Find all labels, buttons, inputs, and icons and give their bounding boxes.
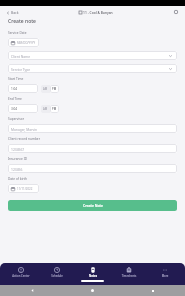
staticText: 3:04 xyxy=(11,107,18,111)
staticText: Insurance ID xyxy=(8,157,177,161)
button[interactable]: 123456 xyxy=(8,164,177,173)
button[interactable]: 11/11/2022 xyxy=(8,184,39,193)
staticText: 11 - Cool & Bunyan xyxy=(83,10,113,14)
button[interactable]: Schedule xyxy=(39,267,75,278)
staticText: MM/DD/YYYY xyxy=(17,41,36,45)
button[interactable]: Back xyxy=(4,9,21,16)
button[interactable]: AM xyxy=(41,105,50,113)
staticText: Timesheets xyxy=(111,274,147,278)
staticText: Back xyxy=(11,10,19,15)
staticText: 1:04 xyxy=(11,87,18,91)
button[interactable]: Create Note xyxy=(8,200,177,211)
staticText: 123456 xyxy=(11,167,23,171)
button[interactable]: More xyxy=(147,267,183,278)
button[interactable]: 1234567 xyxy=(8,144,177,153)
staticText: Supervisor xyxy=(8,117,177,121)
staticText: Schedule xyxy=(39,274,75,278)
button[interactable]: PM xyxy=(50,105,59,113)
staticText: Date of birth xyxy=(8,177,177,181)
staticText: 1234567 xyxy=(11,147,25,151)
button[interactable]: Notes xyxy=(75,267,111,278)
staticText: Manager, Marvin xyxy=(11,127,37,131)
staticText: Start Time xyxy=(8,77,177,81)
staticText: Create note xyxy=(8,18,36,25)
staticText: Action Center xyxy=(3,274,39,278)
button[interactable]: Timesheets xyxy=(111,267,147,278)
button[interactable]: 1:04 xyxy=(8,84,38,93)
staticText: Notes xyxy=(75,274,111,278)
button[interactable]: Client Name xyxy=(8,51,177,60)
button[interactable]: MM/DD/YYYY xyxy=(8,38,39,47)
staticText: AM xyxy=(43,87,48,91)
staticText: Service Date xyxy=(8,31,177,35)
staticText: PM xyxy=(52,107,57,111)
button[interactable]: 3:04 xyxy=(8,104,38,113)
button[interactable]: AM xyxy=(41,85,50,93)
staticText: End Time xyxy=(8,97,177,101)
button[interactable]: Service Type xyxy=(8,64,177,73)
button[interactable]: Recents xyxy=(148,286,157,295)
staticText: Client Name xyxy=(11,54,31,58)
button[interactable]: Action Center xyxy=(3,267,39,278)
button[interactable]: Notifications xyxy=(171,7,181,17)
button[interactable]: PM xyxy=(50,85,59,93)
staticText: PM xyxy=(52,87,57,91)
button[interactable]: Home xyxy=(88,286,97,295)
button[interactable]: Manager, Marvin xyxy=(8,124,177,133)
staticText: Service Type xyxy=(11,67,31,71)
staticText: More xyxy=(147,274,183,278)
staticText: 11/11/2022 xyxy=(17,187,33,191)
staticText: AM xyxy=(43,107,48,111)
staticText: Create Note xyxy=(83,203,103,208)
staticText: Client record number xyxy=(8,137,177,141)
button[interactable]: Back xyxy=(28,286,37,295)
